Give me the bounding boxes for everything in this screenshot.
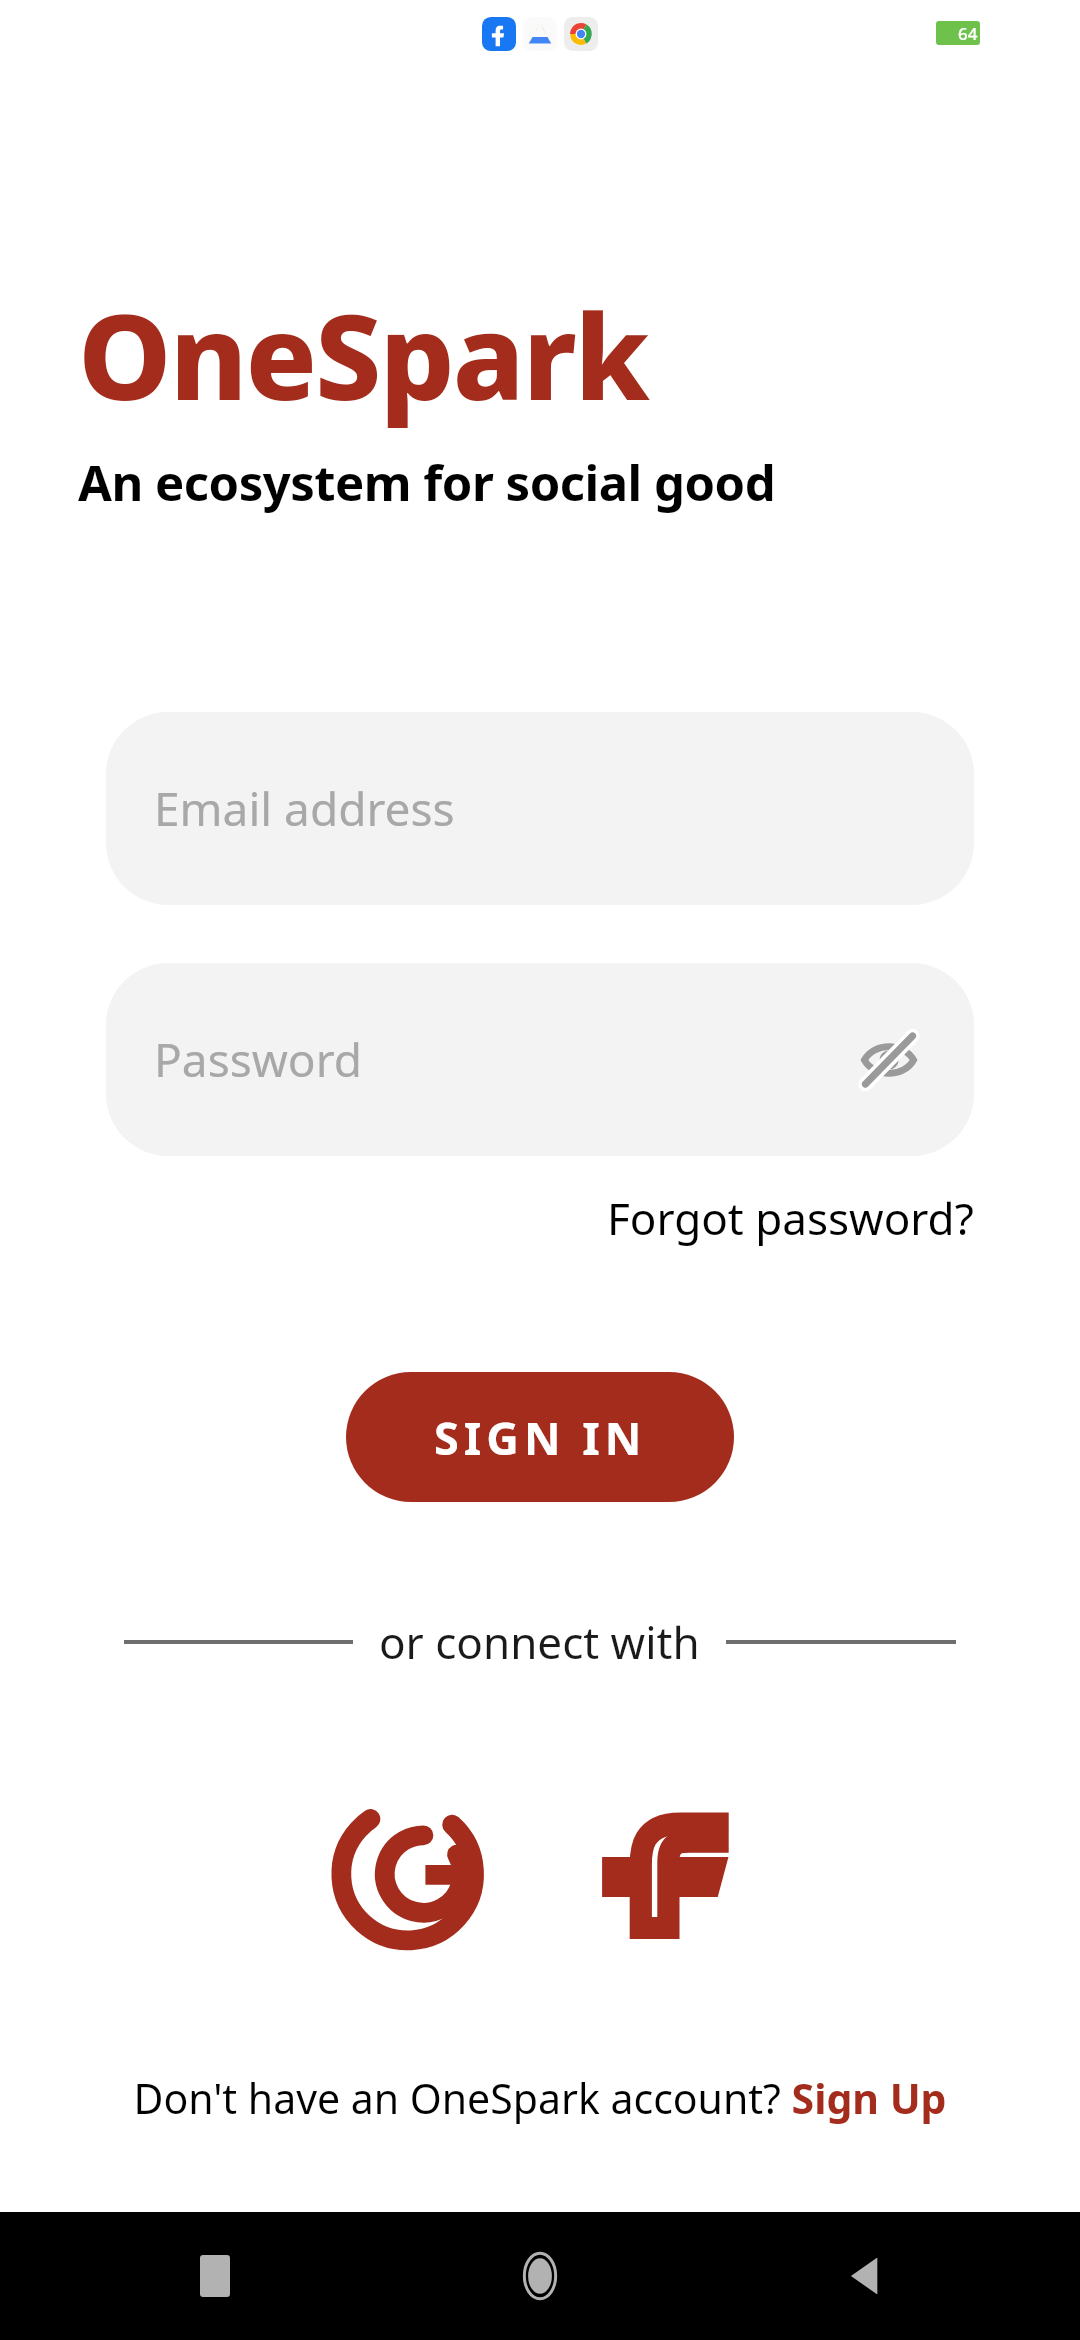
button[interactable]: SIGN IN xyxy=(346,1372,734,1502)
staticText: OneSpark xyxy=(78,274,648,435)
button[interactable]: Recents xyxy=(170,2231,260,2321)
button[interactable]: Sign in with Google xyxy=(314,1774,514,1974)
staticText: or connect with xyxy=(379,1612,700,1672)
button[interactable]: Don't have an OneSpark account? Sign Up xyxy=(123,2060,957,2136)
staticText: 64 xyxy=(958,22,978,45)
button[interactable]: Forgot password? xyxy=(601,1180,980,1256)
button[interactable]: Back xyxy=(820,2231,910,2321)
staticText: Email address xyxy=(154,777,455,840)
staticText: Forgot password? xyxy=(607,1188,974,1248)
button[interactable]: Sign in with Facebook xyxy=(566,1774,766,1974)
button[interactable]: Password xyxy=(106,963,974,1156)
staticText: SIGN IN xyxy=(434,1407,647,1468)
button[interactable]: Home xyxy=(495,2231,585,2321)
staticText: Don't have an OneSpark account? Sign Up xyxy=(133,2070,947,2126)
button[interactable]: Show password xyxy=(844,1015,934,1105)
staticText: Password xyxy=(154,1028,363,1091)
button[interactable]: Email address xyxy=(106,712,974,905)
staticText: An ecosystem for social good xyxy=(78,449,776,516)
